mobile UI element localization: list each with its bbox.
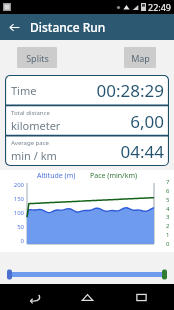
staticText: Total distance — [11, 109, 50, 117]
button[interactable]: Range selector — [0, 270, 174, 284]
button[interactable]: Map — [124, 47, 156, 68]
staticText: Pace (min/km) — [90, 171, 138, 181]
button[interactable]: Time — [5, 75, 169, 106]
staticText: 1 — [166, 231, 170, 239]
button[interactable]: Back — [6, 19, 22, 35]
staticText: kilometer — [11, 118, 61, 133]
staticText: 150 — [2, 195, 24, 203]
staticText: 0 — [166, 240, 170, 248]
staticText: Average pace — [11, 139, 49, 147]
staticText: Altitude (m) — [37, 171, 76, 181]
staticText: 6 — [166, 187, 170, 195]
staticText: Distance Run — [30, 19, 106, 35]
staticText: 100 — [2, 209, 24, 217]
button[interactable]: Home — [67, 284, 107, 310]
staticText: 22:49 — [148, 1, 172, 13]
staticText: Map — [131, 52, 150, 64]
staticText: 200 — [2, 181, 24, 189]
staticText: min / km — [11, 148, 57, 163]
staticText: 2 — [166, 222, 170, 230]
staticText: 50 — [2, 223, 24, 231]
staticText: Time — [11, 83, 37, 98]
staticText: 3 — [166, 213, 170, 221]
staticText: 4 — [166, 205, 170, 213]
staticText: 7 — [166, 178, 170, 186]
staticText: 00:28:29 — [96, 79, 164, 102]
staticText: Splits — [26, 52, 49, 64]
staticText: 5 — [166, 196, 170, 204]
staticText: 0 — [2, 237, 24, 245]
staticText: 6,00 — [130, 110, 164, 133]
button[interactable]: Average pace — [5, 136, 169, 166]
button[interactable]: Back — [14, 284, 54, 310]
button[interactable]: Splits — [17, 47, 57, 68]
button[interactable]: Recent apps — [121, 284, 161, 310]
button[interactable]: Total distance — [5, 106, 169, 136]
staticText: 04:44 — [120, 140, 164, 163]
